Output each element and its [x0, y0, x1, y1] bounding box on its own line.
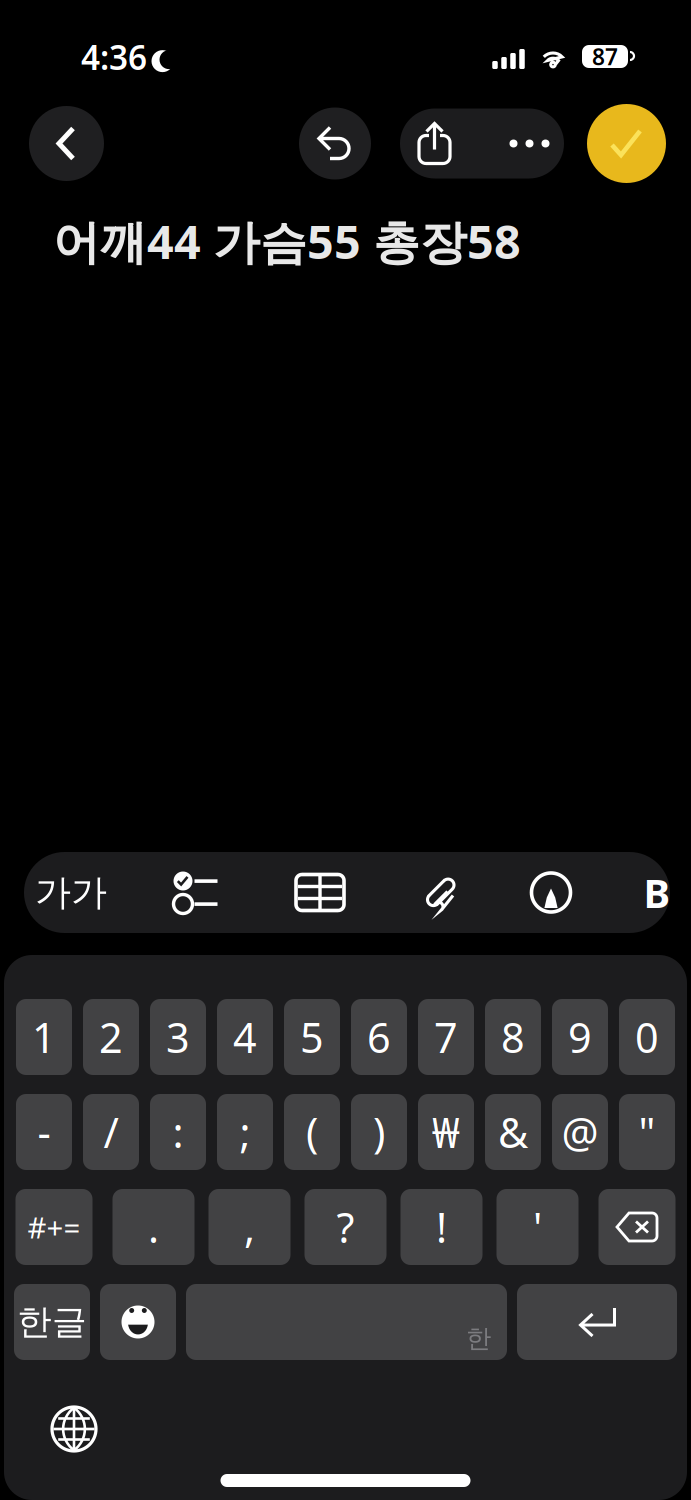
button[interactable]: 6 [351, 999, 407, 1075]
button[interactable]: , [208, 1189, 290, 1265]
button[interactable]: Space [186, 1284, 507, 1360]
staticText: 한 [466, 1323, 491, 1354]
staticText: , [244, 1200, 255, 1254]
staticText: . [148, 1200, 159, 1254]
button[interactable]: : [150, 1094, 206, 1170]
button[interactable]: Switch keyboard [48, 1403, 100, 1455]
button[interactable]: 2 [83, 999, 139, 1075]
staticText: 0 [635, 1010, 659, 1064]
button[interactable]: Attach [367, 852, 512, 933]
staticText: ? [336, 1200, 354, 1254]
button[interactable]: ! [400, 1189, 482, 1265]
staticText: ! [436, 1200, 447, 1254]
staticText: 3 [166, 1010, 190, 1064]
button[interactable]: Text style [24, 852, 118, 933]
button[interactable]: 8 [485, 999, 541, 1075]
button[interactable]: Done [587, 104, 666, 183]
staticText: " [638, 1105, 655, 1159]
button[interactable]: Share [400, 108, 470, 178]
staticText: ) [373, 1105, 385, 1159]
staticText: 어깨44 가슴55 총장58 [53, 210, 521, 272]
button[interactable]: 한글 [14, 1284, 90, 1360]
staticText: B [643, 866, 670, 919]
button[interactable]: Checklist [118, 852, 273, 933]
staticText: ; [239, 1105, 250, 1159]
button[interactable]: ) [351, 1094, 407, 1170]
button[interactable]: 3 [150, 999, 206, 1075]
button[interactable]: Delete [598, 1189, 675, 1265]
staticText: 4 [233, 1010, 257, 1064]
button[interactable]: 0 [619, 999, 675, 1075]
button[interactable]: / [83, 1094, 139, 1170]
button[interactable]: ( [284, 1094, 340, 1170]
staticText: 1 [32, 1010, 56, 1064]
staticText: 6 [367, 1010, 391, 1064]
button[interactable]: Back [29, 106, 104, 181]
button[interactable]: 9 [552, 999, 608, 1075]
button[interactable]: . [112, 1189, 194, 1265]
staticText: 7 [434, 1010, 458, 1064]
button[interactable]: Bold [590, 852, 691, 933]
button[interactable]: Return [517, 1284, 677, 1360]
staticText: 5 [300, 1010, 324, 1064]
staticText: & [498, 1105, 528, 1159]
staticText: ( [306, 1105, 318, 1159]
staticText: 8 [501, 1010, 525, 1064]
staticText: 가가 [35, 870, 107, 915]
button[interactable]: 4 [217, 999, 273, 1075]
button[interactable]: ; [217, 1094, 273, 1170]
button[interactable]: ' [496, 1189, 578, 1265]
button[interactable]: 5 [284, 999, 340, 1075]
button[interactable]: & [485, 1094, 541, 1170]
staticText: 4:36 [81, 35, 147, 79]
button[interactable]: Emoji [100, 1284, 176, 1360]
button[interactable]: Table [273, 852, 367, 933]
button[interactable]: Markup [512, 852, 590, 933]
staticText: 87 [592, 41, 618, 71]
staticText: ₩ [432, 1105, 460, 1159]
button[interactable]: @ [552, 1094, 608, 1170]
button[interactable]: More [470, 108, 564, 178]
staticText: @ [561, 1105, 598, 1159]
staticText: 9 [568, 1010, 592, 1064]
button[interactable]: #+= [15, 1189, 92, 1265]
button[interactable]: " [619, 1094, 675, 1170]
staticText: ' [533, 1200, 542, 1254]
staticText: - [37, 1105, 50, 1159]
staticText: #+= [27, 1207, 80, 1246]
button[interactable]: - [16, 1094, 72, 1170]
button[interactable]: ₩ [418, 1094, 474, 1170]
staticText: 한글 [17, 1301, 87, 1343]
staticText: 2 [99, 1010, 123, 1064]
staticText: / [103, 1105, 118, 1159]
button[interactable]: 1 [16, 999, 72, 1075]
button[interactable]: Undo [299, 107, 371, 179]
staticText: : [172, 1105, 183, 1159]
button[interactable]: 7 [418, 999, 474, 1075]
button[interactable]: ? [304, 1189, 386, 1265]
